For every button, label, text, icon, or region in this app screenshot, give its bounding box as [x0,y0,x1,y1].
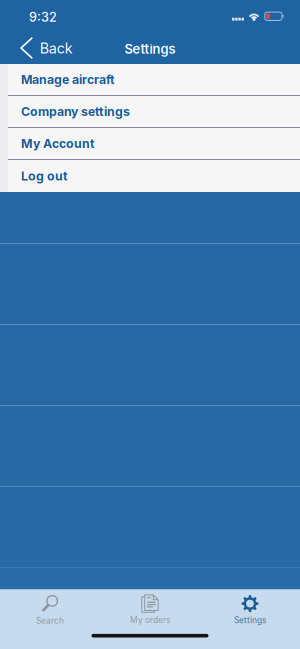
staticText: Company settings [21,104,130,119]
staticText: Manage aircraft [21,72,115,87]
button[interactable]: My orders [100,590,200,625]
button[interactable]: Log out [0,160,300,192]
staticText: 9:32 [29,9,57,25]
button[interactable]: Search [0,590,100,626]
button[interactable]: Manage aircraft [0,64,300,96]
staticText: Settings [234,615,266,625]
staticText: Log out [21,168,68,183]
button[interactable]: Back [0,30,85,64]
button[interactable]: Company settings [0,96,300,128]
staticText: Settings [124,41,175,57]
staticText: Back [40,39,73,57]
staticText: Search [36,615,64,626]
button[interactable]: Settings [200,590,300,625]
button[interactable]: My Account [0,128,300,160]
staticText: My Account [21,136,95,151]
staticText: My orders [130,615,170,625]
